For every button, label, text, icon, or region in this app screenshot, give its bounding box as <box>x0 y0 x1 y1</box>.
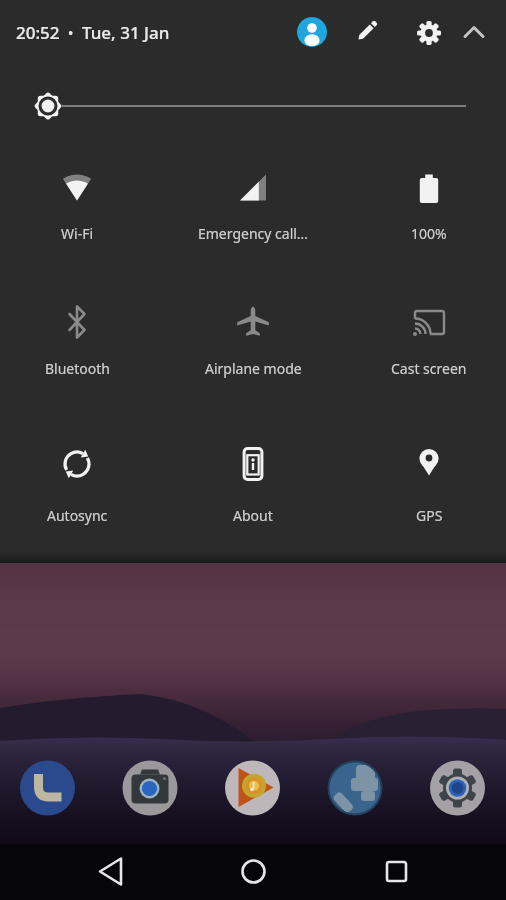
staticText: Wi-Fi <box>61 224 94 243</box>
button[interactable]: Wi-Fi <box>0 163 161 246</box>
button[interactable] <box>296 16 328 48</box>
button[interactable]: GPS <box>345 438 506 528</box>
staticText: 100% <box>411 224 447 243</box>
button[interactable]: Airplane mode <box>169 296 337 381</box>
button[interactable]: Bluetooth <box>0 296 161 381</box>
staticText: • <box>68 23 74 42</box>
button[interactable] <box>327 760 383 816</box>
staticText: Bluetooth <box>45 359 110 378</box>
staticText: Emergency call… <box>198 224 308 243</box>
button[interactable] <box>19 760 75 816</box>
staticText: Autosync <box>47 506 108 525</box>
button[interactable] <box>374 849 418 893</box>
button[interactable]: Cast screen <box>345 296 506 381</box>
button[interactable]: Autosync <box>0 438 161 528</box>
button[interactable]: 100% <box>345 163 506 246</box>
button[interactable] <box>224 760 280 816</box>
button[interactable] <box>416 20 442 46</box>
button[interactable] <box>462 22 486 42</box>
button[interactable] <box>89 849 133 893</box>
staticText: Airplane mode <box>205 359 302 378</box>
staticText: 20:52 <box>16 21 60 44</box>
staticText: Cast screen <box>391 359 467 378</box>
button[interactable]: About <box>169 438 337 528</box>
button[interactable] <box>28 88 478 124</box>
button[interactable] <box>231 849 275 893</box>
button[interactable] <box>122 760 178 816</box>
button[interactable]: Emergency call… <box>169 163 337 246</box>
staticText: About <box>233 506 273 525</box>
button[interactable] <box>429 760 485 816</box>
button[interactable] <box>354 18 380 44</box>
staticText: Tue, 31 Jan <box>82 21 170 44</box>
staticText: GPS <box>416 506 443 525</box>
